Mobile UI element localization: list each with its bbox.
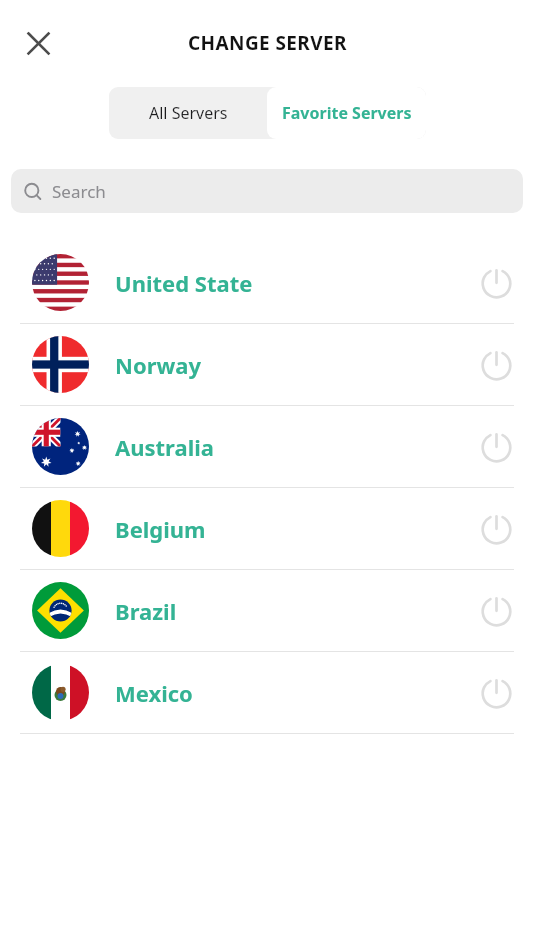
button[interactable]: Favorite Servers — [267, 87, 426, 139]
button[interactable]: Norway — [0, 324, 534, 406]
button[interactable]: Australia — [0, 406, 534, 488]
button[interactable]: Connect to Brazil — [468, 583, 524, 639]
staticText: Search — [52, 180, 106, 203]
button[interactable]: Connect to United State — [468, 255, 524, 311]
button[interactable]: Connect to Australia — [468, 419, 524, 475]
button[interactable]: Mexico — [0, 652, 534, 734]
button[interactable]: Close — [14, 19, 62, 67]
staticText: Norway — [115, 350, 202, 380]
staticText: All Servers — [149, 102, 228, 124]
staticText: Australia — [115, 432, 215, 462]
button[interactable]: Search — [11, 169, 523, 213]
staticText: Favorite Servers — [282, 102, 412, 124]
button[interactable]: Brazil — [0, 570, 534, 652]
button[interactable]: Belgium — [0, 488, 534, 570]
staticText: United State — [115, 268, 253, 298]
staticText: Brazil — [115, 596, 177, 626]
button[interactable]: Connect to Mexico — [468, 665, 524, 721]
staticText: Belgium — [115, 514, 206, 544]
staticText: Mexico — [115, 678, 193, 708]
button[interactable]: Connect to Norway — [468, 337, 524, 393]
button[interactable]: All Servers — [109, 87, 267, 139]
staticText: CHANGE SERVER — [188, 30, 347, 56]
button[interactable]: Connect to Belgium — [468, 501, 524, 557]
button[interactable]: United State — [0, 242, 534, 324]
